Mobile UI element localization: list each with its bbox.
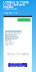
staticText: Lorem ipsum dolor sit amet [5,30,22,40]
staticText: sed do eiusmod tempor [5,34,17,44]
staticText: E TRATTAMENTO [3,3,25,6]
staticText: consectetur adipiscing elit [5,32,21,42]
staticText: DENTALE [3,5,13,9]
staticText: Preventivo trasparente [3,7,18,14]
staticText: incididunt ut labore [5,36,18,46]
staticText: CONSIGLI SU PIANO [3,1,29,4]
button[interactable]: Richiedi preventivo [8,63,27,67]
staticText: Nota informativa [7,52,28,56]
staticText: Richiedi preventivo [10,61,25,69]
